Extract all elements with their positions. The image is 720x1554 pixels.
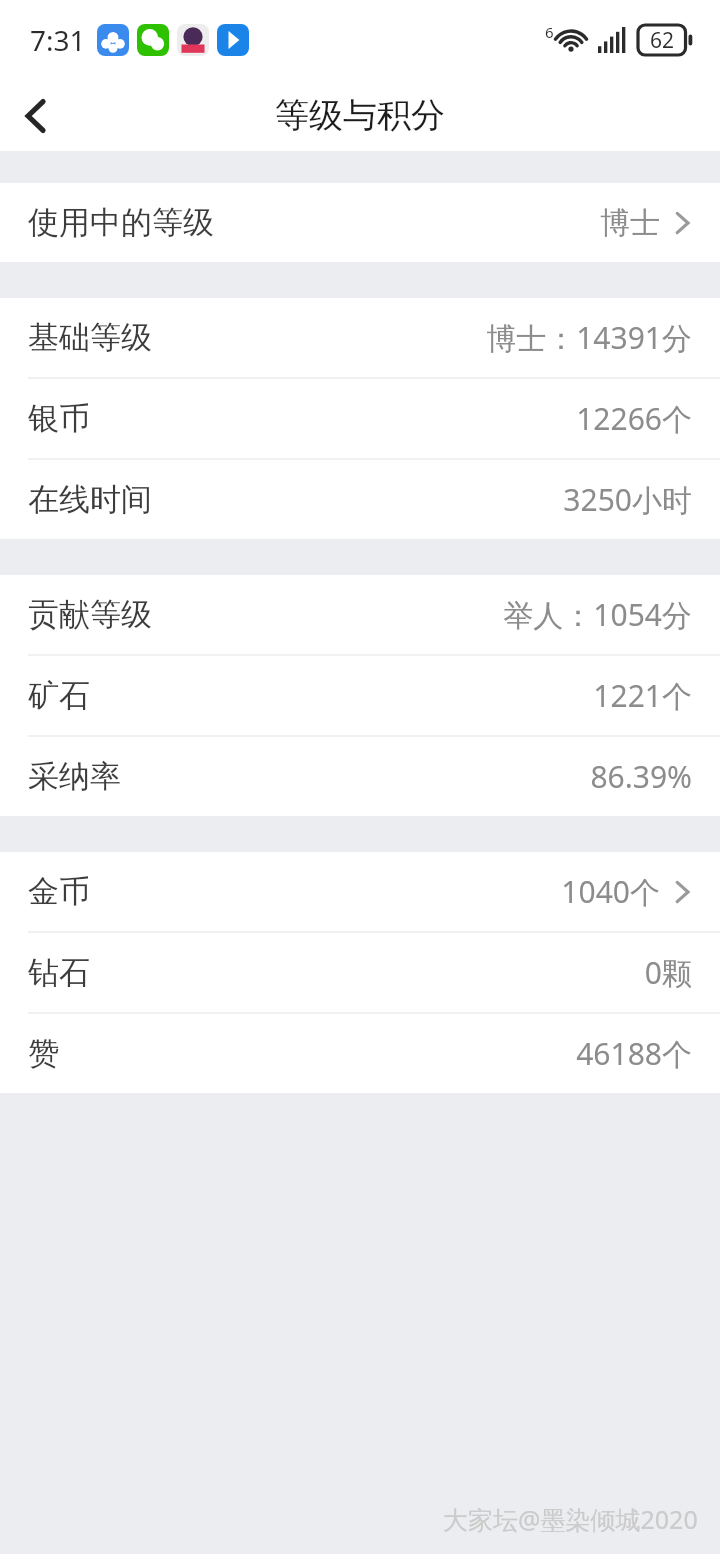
staticText: 博士 bbox=[600, 204, 660, 242]
button[interactable]: 金币 bbox=[0, 852, 720, 931]
staticText: 86.39% bbox=[590, 756, 692, 797]
staticText: 钻石 bbox=[28, 953, 90, 992]
staticText: 矿石 bbox=[28, 676, 90, 715]
staticText: 1040个 bbox=[561, 871, 660, 912]
staticText: 基础等级 bbox=[28, 318, 152, 357]
staticText: 金币 bbox=[28, 872, 90, 911]
button[interactable]: 矿石 bbox=[0, 656, 720, 735]
staticText: 举人：1054分 bbox=[503, 594, 692, 635]
staticText: 银币 bbox=[28, 399, 90, 438]
staticText: 46188个 bbox=[576, 1033, 692, 1074]
staticText: 62 bbox=[650, 26, 675, 55]
staticText: 大家坛@墨染倾城2020 bbox=[443, 1502, 698, 1536]
staticText: 7:31 bbox=[30, 21, 86, 59]
staticText: 贡献等级 bbox=[28, 595, 152, 634]
button[interactable]: 钻石 bbox=[0, 933, 720, 1012]
staticText: 等级与积分 bbox=[275, 94, 445, 137]
button[interactable]: 贡献等级 bbox=[0, 575, 720, 654]
staticText: 采纳率 bbox=[28, 757, 121, 796]
button[interactable]: 使用中的等级 bbox=[0, 183, 720, 262]
staticText: 在线时间 bbox=[28, 480, 152, 519]
button[interactable]: 在线时间 bbox=[0, 460, 720, 539]
button[interactable]: 赞 bbox=[0, 1014, 720, 1093]
button[interactable]: Back bbox=[0, 80, 72, 151]
staticText: 使用中的等级 bbox=[28, 203, 214, 242]
staticText: 1221个 bbox=[593, 675, 692, 716]
staticText: 博士：14391分 bbox=[486, 317, 692, 358]
staticText: 12266个 bbox=[576, 398, 692, 439]
button[interactable]: 银币 bbox=[0, 379, 720, 458]
staticText: 赞 bbox=[28, 1034, 59, 1073]
button[interactable]: 基础等级 bbox=[0, 298, 720, 377]
staticText: 6 bbox=[545, 22, 554, 42]
button[interactable]: 采纳率 bbox=[0, 737, 720, 816]
staticText: 3250小时 bbox=[563, 479, 692, 520]
staticText: 0颗 bbox=[644, 952, 692, 993]
